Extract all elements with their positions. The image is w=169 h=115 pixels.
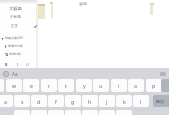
- button[interactable]: 带圆点项目符: [0, 33, 36, 42]
- button[interactable]: x: [31, 110, 47, 115]
- button[interactable]: Clipboard: [158, 69, 167, 78]
- button[interactable]: s: [14, 95, 30, 107]
- staticText: i: [118, 82, 120, 89]
- button[interactable]: q: [0, 79, 4, 92]
- button[interactable]: o: [128, 79, 144, 92]
- button[interactable]: 大标题: [0, 4, 36, 13]
- staticText: 缩进列表: [9, 52, 21, 56]
- button[interactable]: p: [146, 79, 162, 92]
- button[interactable]: Underline: [23, 60, 32, 69]
- staticText: w: [12, 82, 17, 89]
- staticText: Aa: [12, 71, 18, 77]
- staticText: 带编号列表: [8, 44, 23, 48]
- staticText: r: [48, 82, 51, 89]
- staticText: 正文: [11, 24, 19, 29]
- staticText: y: [83, 82, 86, 89]
- button[interactable]: t: [58, 79, 74, 92]
- button[interactable]: w: [6, 79, 22, 92]
- staticText: B: [5, 62, 8, 67]
- staticText: e: [30, 82, 33, 89]
- staticText: 换行: [156, 99, 165, 104]
- button[interactable]: i: [111, 79, 127, 92]
- staticText: U: [26, 62, 29, 67]
- button[interactable]: e: [23, 79, 39, 92]
- staticText: f: [55, 98, 57, 105]
- button[interactable]: c: [48, 110, 64, 115]
- button[interactable]: Text size: [10, 69, 19, 78]
- staticText: t: [65, 82, 67, 89]
- button[interactable]: b: [82, 110, 98, 115]
- button[interactable]: Backspace: [161, 79, 169, 92]
- staticText: 小标题: [10, 15, 21, 20]
- button[interactable]: l: [133, 95, 149, 107]
- staticText: d: [37, 98, 41, 105]
- button[interactable]: f: [48, 95, 64, 107]
- button[interactable]: a: [0, 95, 13, 107]
- staticText: u: [99, 82, 103, 89]
- button[interactable]: 正文: [0, 22, 36, 31]
- staticText: p: [152, 82, 156, 89]
- button[interactable]: 缩进列表: [0, 49, 36, 58]
- button[interactable]: y: [76, 79, 92, 92]
- button[interactable]: m: [116, 110, 132, 115]
- button[interactable]: Bold: [2, 60, 11, 69]
- button[interactable]: n: [99, 110, 115, 115]
- button[interactable]: k: [116, 95, 132, 107]
- button[interactable]: v: [65, 110, 81, 115]
- button[interactable]: j: [99, 95, 115, 107]
- button[interactable]: 带编号列表: [0, 41, 36, 50]
- staticText: o: [134, 82, 138, 89]
- staticText: l: [140, 98, 142, 105]
- button[interactable]: 换行: [153, 95, 169, 107]
- staticText: k: [123, 98, 126, 105]
- button[interactable]: 小标题: [0, 13, 36, 22]
- staticText: 标题: [79, 1, 87, 6]
- button[interactable]: h: [82, 95, 98, 107]
- button[interactable]: g: [65, 95, 81, 107]
- staticText: a: [4, 98, 7, 105]
- button[interactable]: z: [14, 110, 30, 115]
- staticText: s: [21, 98, 24, 105]
- button[interactable]: Keyboard settings: [1, 69, 10, 78]
- staticText: I: [17, 62, 19, 67]
- staticText: h: [88, 98, 92, 105]
- staticText: j: [106, 98, 108, 105]
- button[interactable]: Italic: [13, 60, 22, 69]
- button[interactable]: u: [93, 79, 109, 92]
- staticText: g: [71, 98, 75, 105]
- staticText: 大标题: [9, 6, 22, 11]
- button[interactable]: r: [41, 79, 57, 92]
- staticText: 带圆点项目符: [5, 36, 23, 40]
- button[interactable]: d: [31, 95, 47, 107]
